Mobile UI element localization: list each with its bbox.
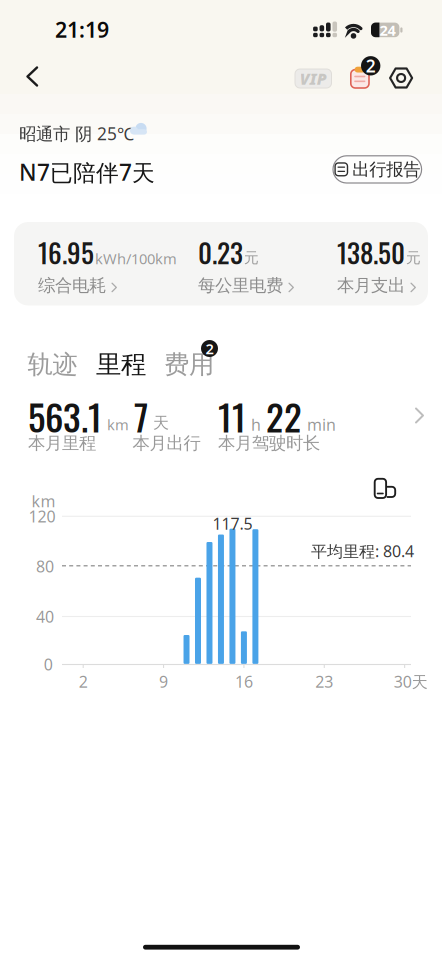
- staticText: 24: [380, 20, 396, 40]
- staticText: km: [107, 415, 129, 434]
- staticText: 11: [218, 389, 246, 443]
- staticText: 0.23: [198, 232, 243, 272]
- staticText: 7: [134, 389, 148, 443]
- staticText: 23: [315, 671, 333, 692]
- button[interactable]: 轨迹: [27, 349, 77, 380]
- button[interactable]: [388, 65, 414, 91]
- staticText: 2: [205, 339, 213, 358]
- staticText: 120: [28, 506, 55, 527]
- staticText: km: [31, 490, 55, 512]
- staticText: 元: [406, 249, 421, 267]
- staticText: 昭通市 阴 25℃: [19, 122, 134, 145]
- staticText: 平均里程: 80.4: [311, 540, 414, 562]
- button[interactable]: [374, 478, 398, 500]
- button[interactable]: 2: [350, 65, 381, 88]
- staticText: 轨迹: [27, 349, 77, 380]
- button[interactable]: 费用: [164, 340, 219, 371]
- button[interactable]: [0, 0, 442, 960]
- staticText: 元: [244, 249, 259, 267]
- button[interactable]: 里程: [96, 349, 146, 380]
- staticText: 天: [153, 413, 169, 433]
- staticText: 40: [36, 606, 54, 627]
- button[interactable]: 出行报告: [333, 156, 422, 183]
- staticText: 本月出行: [132, 432, 200, 454]
- staticText: 21:19: [55, 15, 109, 44]
- staticText: kWh/100km: [95, 249, 177, 268]
- button[interactable]: 0.23: [0, 0, 442, 960]
- button[interactable]: 16.95: [0, 0, 442, 960]
- staticText: 16.95: [38, 232, 94, 272]
- button[interactable]: 138.50: [0, 0, 442, 960]
- staticText: 费用: [164, 349, 214, 380]
- staticText: 30天: [394, 671, 428, 692]
- staticText: 出行报告: [352, 159, 420, 180]
- staticText: h: [251, 414, 261, 435]
- staticText: VIP: [300, 68, 327, 89]
- staticText: 138.50: [337, 232, 405, 272]
- staticText: 563.1: [28, 389, 102, 443]
- button[interactable]: 563.1: [0, 0, 442, 960]
- staticText: 里程: [96, 349, 146, 380]
- button[interactable]: VIP: [295, 69, 331, 88]
- staticText: 9: [159, 671, 168, 692]
- staticText: 2: [366, 54, 376, 77]
- staticText: 每公里电费: [198, 275, 283, 296]
- staticText: 本月支出: [337, 275, 405, 296]
- staticText: 80: [36, 556, 54, 577]
- staticText: 22: [266, 389, 302, 443]
- staticText: 0: [44, 654, 53, 675]
- staticText: 2: [79, 671, 88, 692]
- staticText: 本月驾驶时长: [218, 432, 320, 454]
- staticText: 综合电耗: [38, 275, 106, 296]
- staticText: 117.5: [212, 513, 252, 534]
- staticText: min: [307, 414, 336, 435]
- staticText: 本月里程: [28, 432, 96, 454]
- staticText: N7已陪伴7天: [19, 157, 155, 187]
- staticText: 16: [235, 671, 253, 692]
